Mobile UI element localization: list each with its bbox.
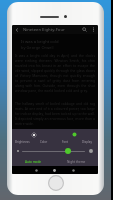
button[interactable]: Back xyxy=(27,166,45,174)
button[interactable]: Recent apps xyxy=(64,166,83,174)
button[interactable]: Brightness xyxy=(12,139,33,145)
staticText: Night theme xyxy=(67,160,86,164)
staticText: It was a bright cold xyxy=(21,39,59,45)
staticText: Font xyxy=(62,140,69,144)
button[interactable]: Back xyxy=(12,25,21,34)
staticText: by George Orwell xyxy=(21,45,54,50)
button[interactable]: Brightness level xyxy=(65,148,71,154)
button[interactable]: Brightness xyxy=(29,130,38,139)
button[interactable]: Display xyxy=(76,139,98,145)
button[interactable]: Auto mode xyxy=(12,160,55,164)
staticText: Display xyxy=(82,140,92,144)
staticText: The hallway smelt of boiled cabbage and … xyxy=(15,101,95,126)
staticText: Nineteen Eighty-Four xyxy=(23,27,65,33)
staticText: Brightness xyxy=(15,140,30,144)
other: Increase xyxy=(88,148,94,154)
button[interactable]: Color xyxy=(33,139,54,145)
button[interactable]: Night theme xyxy=(55,160,98,164)
button[interactable]: Search xyxy=(80,25,89,34)
staticText: Color xyxy=(40,140,48,144)
staticText: It was a bright cold day in April, and t… xyxy=(15,53,95,93)
button[interactable]: Font xyxy=(54,139,76,145)
other: Decrease xyxy=(15,148,21,154)
button[interactable]: More options xyxy=(89,25,98,34)
button[interactable]: Home xyxy=(45,166,64,174)
button[interactable]: Theme color xyxy=(70,130,79,139)
staticText: Auto mode xyxy=(25,160,42,164)
